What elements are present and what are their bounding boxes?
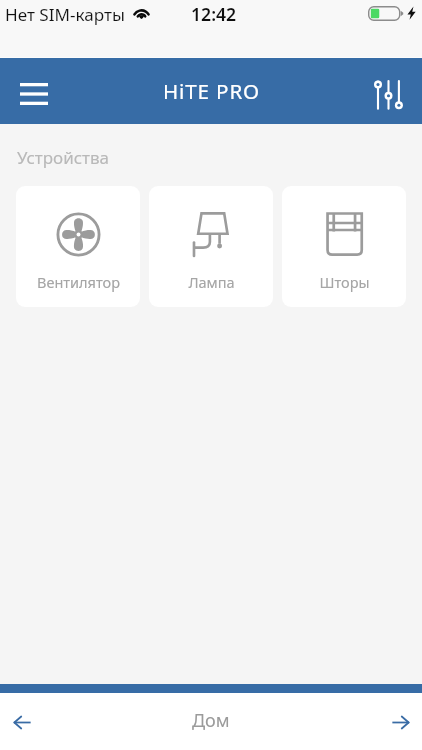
- staticText: Дом: [192, 708, 230, 733]
- button[interactable]: Menu: [12, 72, 56, 116]
- staticText: Устройства: [17, 146, 110, 169]
- button[interactable]: Settings: [366, 69, 410, 113]
- staticText: Нет SIM-карты: [5, 3, 125, 26]
- button[interactable]: Шторы: [282, 186, 406, 307]
- staticText: Лампа: [188, 272, 235, 292]
- button[interactable]: Вентилятор: [16, 186, 140, 307]
- staticText: 12:42: [191, 2, 237, 26]
- staticText: Вентилятор: [37, 272, 120, 292]
- button[interactable]: Back: [3, 703, 41, 741]
- staticText: HiTE PRO: [163, 77, 260, 105]
- staticText: Шторы: [319, 272, 370, 292]
- button[interactable]: Forward: [381, 703, 419, 741]
- button[interactable]: Лампа: [149, 186, 273, 307]
